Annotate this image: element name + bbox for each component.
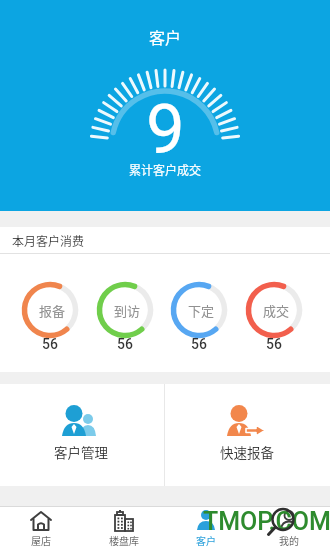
staticText: TMOP.COM <box>203 507 330 536</box>
staticText: 到访 <box>114 301 141 320</box>
staticText: 客户 <box>196 533 216 547</box>
button[interactable] <box>82 506 164 550</box>
staticText: 56 <box>42 336 58 352</box>
staticText: 本月客户消费 <box>12 232 85 249</box>
staticText: 楼盘库 <box>109 533 139 547</box>
staticText: 我的 <box>279 533 299 547</box>
staticText: 快速报备 <box>220 442 274 462</box>
button[interactable] <box>165 384 330 486</box>
staticText: 9 <box>146 89 185 170</box>
button[interactable] <box>0 384 165 486</box>
staticText: 客户 <box>149 25 182 48</box>
button[interactable] <box>164 506 246 550</box>
staticText: 屋店 <box>31 533 51 547</box>
staticText: 累计客户成交 <box>129 161 202 178</box>
staticText: 成交 <box>263 301 290 320</box>
staticText: 报备 <box>39 301 66 320</box>
button[interactable] <box>246 506 330 550</box>
staticText: 56 <box>191 336 207 352</box>
button[interactable] <box>0 506 82 550</box>
staticText: 下定 <box>188 301 215 320</box>
staticText: 56 <box>266 336 282 352</box>
staticText: 客户管理 <box>54 442 108 462</box>
staticText: 56 <box>117 336 133 352</box>
